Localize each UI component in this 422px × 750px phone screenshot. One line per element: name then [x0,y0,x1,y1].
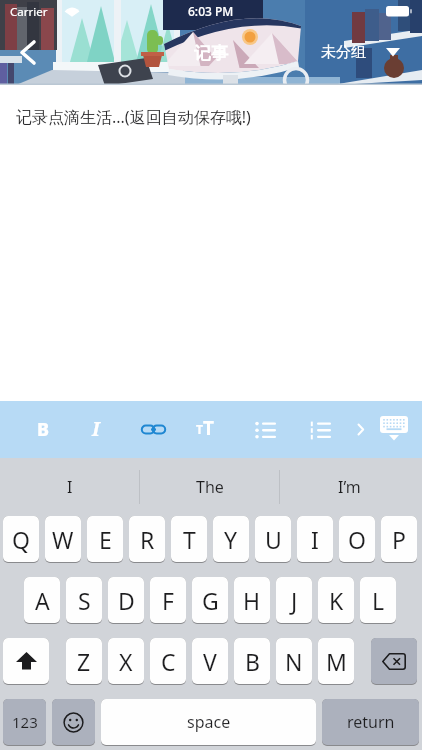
button[interactable]: W [45,516,81,563]
button[interactable]: R [129,516,165,563]
staticText: Q [12,524,30,555]
button[interactable]: N [276,638,312,685]
staticText: D [118,585,135,616]
staticText: S [78,585,91,616]
button[interactable]: B [29,415,57,443]
button[interactable] [10,36,48,70]
button[interactable]: Y [213,516,249,563]
staticText: I [67,476,73,498]
button[interactable]: X [108,638,144,685]
button[interactable]: V [192,638,228,685]
staticText: U [265,524,282,555]
staticText: space [187,711,231,733]
staticText: B [245,646,260,677]
staticText: P [392,524,406,555]
staticText: Carrier [10,4,48,20]
staticText: 123 [12,712,38,732]
button[interactable]: 记录点滴生活...(返回自动保存哦!) [0,85,422,401]
staticText: J [291,585,298,616]
button[interactable]: 123 [3,699,46,746]
button[interactable] [3,638,49,685]
staticText: O [348,524,366,555]
staticText: T [183,524,196,555]
staticText: V [203,646,217,677]
staticText: B [37,417,50,442]
button[interactable]: T [171,516,207,563]
button[interactable]: K [318,577,354,624]
staticText: 记事 [194,43,228,64]
button[interactable]: I’m [280,458,419,516]
staticText: R [140,524,155,555]
staticText: I’m [338,476,361,498]
button[interactable]: P [381,516,417,563]
staticText: I [92,416,100,442]
button[interactable]: space [101,699,316,746]
staticText: 记录点滴生活...(返回自动保存哦!) [16,106,251,128]
button[interactable]: I [0,458,139,516]
button[interactable]: G [192,577,228,624]
staticText: X [119,646,133,677]
button[interactable]: T [196,415,228,443]
button[interactable]: S [66,577,102,624]
staticText: L [372,585,385,616]
button[interactable]: E [87,516,123,563]
button[interactable]: I [82,415,110,443]
button[interactable]: D [108,577,144,624]
staticText: T [196,421,203,437]
staticText: G [202,585,219,616]
button[interactable]: H [234,577,270,624]
button[interactable] [378,414,410,444]
button[interactable] [371,638,417,685]
staticText: M [326,646,347,677]
staticText: return [347,711,395,733]
staticText: C [161,646,176,677]
button[interactable]: L [360,577,396,624]
button[interactable]: A [24,577,60,624]
staticText: 6:03 PM [188,3,234,19]
staticText: W [52,524,74,555]
button[interactable] [52,699,95,746]
button[interactable]: B [234,638,270,685]
button[interactable]: return [322,699,419,746]
button[interactable]: O [339,516,375,563]
button[interactable]: Z [66,638,102,685]
button[interactable]: J [276,577,312,624]
staticText: A [35,585,50,616]
button[interactable] [251,415,279,443]
button[interactable] [306,415,334,443]
button[interactable]: C [150,638,186,685]
button[interactable]: Q [3,516,39,563]
button[interactable] [353,420,369,438]
button[interactable]: I [297,516,333,563]
staticText: H [243,585,261,616]
staticText: I [311,524,319,555]
button[interactable]: The [140,458,279,516]
staticText: 未分组 [321,43,366,62]
staticText: K [329,585,344,616]
staticText: F [162,585,174,616]
staticText: T [203,415,214,439]
button[interactable]: U [255,516,291,563]
button[interactable]: 未分组 [321,41,413,63]
staticText: Y [224,524,238,555]
staticText: Z [77,646,91,677]
button[interactable]: M [318,638,354,685]
button[interactable] [139,415,167,443]
staticText: E [99,524,112,555]
staticText: N [285,646,303,677]
button[interactable]: F [150,577,186,624]
staticText: The [196,476,224,498]
